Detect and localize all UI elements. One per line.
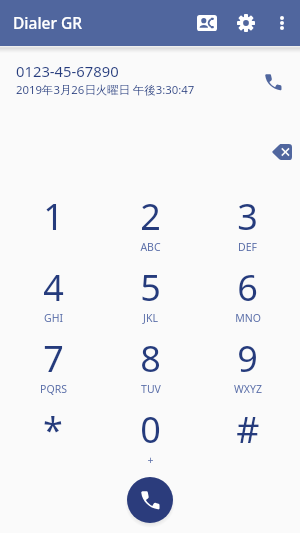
staticText: 8 bbox=[140, 334, 161, 374]
staticText: Dialer GR bbox=[13, 12, 83, 33]
button[interactable]: More options bbox=[268, 9, 296, 37]
staticText: MNO bbox=[235, 311, 261, 325]
staticText: 6 bbox=[237, 263, 258, 303]
staticText: PQRS bbox=[40, 382, 67, 396]
staticText: 2 bbox=[140, 192, 161, 232]
staticText: # bbox=[236, 405, 260, 445]
staticText: + bbox=[147, 453, 154, 467]
button[interactable]: 4 bbox=[4, 253, 102, 324]
staticText: 7 bbox=[43, 334, 64, 374]
staticText: 0 bbox=[140, 405, 161, 445]
button[interactable]: Call bbox=[127, 477, 173, 523]
button[interactable]: 5 bbox=[102, 253, 199, 324]
button[interactable]: Call bbox=[257, 66, 289, 98]
button[interactable]: Settings bbox=[230, 6, 262, 38]
staticText: * bbox=[43, 405, 63, 445]
button[interactable]: * bbox=[4, 395, 102, 466]
staticText: WXYZ bbox=[234, 382, 262, 396]
button[interactable]: 1 bbox=[4, 182, 102, 253]
button[interactable]: 2 bbox=[102, 182, 199, 253]
staticText: 4 bbox=[43, 263, 64, 303]
staticText: ABC bbox=[140, 240, 161, 254]
button[interactable]: 8 bbox=[102, 324, 199, 395]
staticText: GHI bbox=[44, 311, 63, 325]
button[interactable]: 3 bbox=[199, 182, 296, 253]
staticText: 9 bbox=[237, 334, 258, 374]
button[interactable]: 6 bbox=[199, 253, 296, 324]
staticText: JKL bbox=[143, 311, 158, 325]
button[interactable]: Backspace bbox=[268, 138, 296, 166]
staticText: 1 bbox=[43, 192, 64, 232]
button[interactable]: Contacts bbox=[190, 6, 223, 39]
staticText: 0123-45-67890 bbox=[16, 61, 119, 81]
button[interactable]: 7 bbox=[4, 324, 102, 395]
staticText: DEF bbox=[238, 240, 257, 254]
staticText: 2019年3月26日火曜日 午後3:30:47 bbox=[16, 82, 195, 98]
staticText: 5 bbox=[140, 263, 161, 303]
button[interactable]: 0 bbox=[102, 395, 199, 466]
button[interactable]: 9 bbox=[199, 324, 296, 395]
staticText: 3 bbox=[237, 192, 258, 232]
staticText: TUV bbox=[141, 382, 161, 396]
button[interactable]: # bbox=[199, 395, 296, 466]
